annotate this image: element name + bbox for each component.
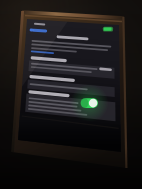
- button[interactable]: Back to Settings: [24, 20, 58, 32]
- button[interactable]: Peak Performance Capability: [26, 77, 118, 91]
- button[interactable]: Optimized Battery Charging, on: [79, 90, 101, 106]
- button[interactable]: Maximum Capacity 89 percent: [28, 57, 118, 73]
